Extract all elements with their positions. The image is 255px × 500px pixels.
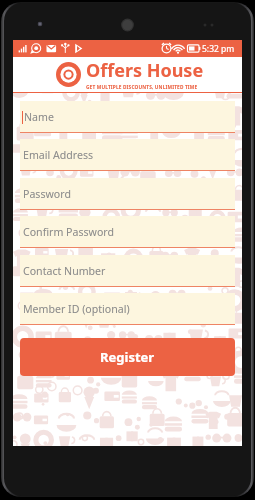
staticText: Offers House [86,58,204,83]
staticText: Email Address [23,148,94,162]
staticText: 5:32 pm [202,43,235,55]
button[interactable]: Confirm Password [20,216,235,248]
button[interactable]: Email Address [20,139,235,171]
button[interactable]: Member ID (optional) [20,293,235,325]
button[interactable]: Password [20,178,235,210]
button[interactable]: Register [20,338,235,376]
button[interactable]: Contact Number [20,255,235,287]
staticText: Contact Number [23,264,106,278]
button[interactable]: Name [20,101,235,133]
staticText: Confirm Password [23,225,114,239]
staticText: Name [24,110,54,124]
staticText: Password [23,187,71,201]
staticText: Register [100,348,155,366]
staticText: GET MULTIPLE DISCOUNTS, UNLIMITED TIME [86,84,198,91]
staticText: Member ID (optional) [23,302,130,316]
